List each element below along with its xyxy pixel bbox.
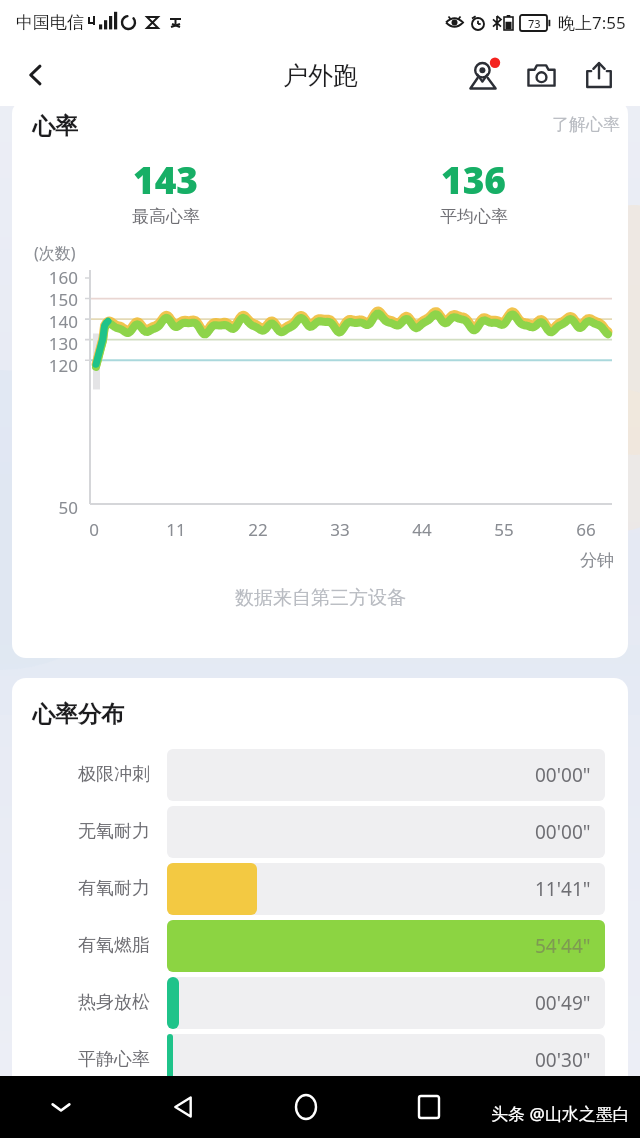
staticText: 22: [244, 518, 272, 541]
staticText: 44: [408, 518, 436, 541]
staticText: 66: [572, 518, 600, 541]
staticText: 00'49": [535, 990, 591, 1016]
button[interactable]: Home: [244, 1076, 367, 1138]
button[interactable]: 极限冲刺: [12, 746, 628, 803]
staticText: 户外跑: [283, 60, 358, 91]
staticText: 中国电信: [16, 12, 84, 33]
staticText: 0: [80, 518, 108, 541]
staticText: 00'00": [535, 762, 591, 788]
staticText: 极限冲刺: [12, 763, 150, 786]
staticText: 130: [38, 332, 78, 355]
staticText: 73: [528, 16, 541, 31]
staticText: 00'30": [535, 1047, 591, 1073]
staticText: 120: [38, 354, 78, 377]
staticText: 无氧耐力: [12, 820, 150, 843]
button[interactable]: Route map: [454, 46, 512, 104]
staticText: 54'44": [535, 933, 591, 959]
button[interactable]: Share: [570, 46, 628, 104]
button[interactable]: Camera: [512, 46, 570, 104]
staticText: 最高心率: [132, 206, 200, 227]
staticText: 00'00": [535, 819, 591, 845]
staticText: 数据来自第三方设备: [235, 586, 406, 610]
staticText: 了解心率: [552, 114, 620, 135]
button[interactable]: Hide: [0, 1076, 122, 1138]
button[interactable]: 了解心率: [544, 110, 628, 139]
button[interactable]: Recents: [367, 1076, 490, 1138]
staticText: 150: [38, 288, 78, 311]
staticText: 55: [490, 518, 518, 541]
staticText: 11'41": [535, 876, 591, 902]
staticText: (次数): [34, 242, 76, 264]
staticText: 心率分布: [32, 700, 124, 729]
staticText: 50: [38, 496, 78, 519]
staticText: 136: [441, 154, 507, 204]
staticText: 分钟: [580, 550, 614, 571]
staticText: 有氧燃脂: [12, 934, 150, 957]
staticText: 11: [162, 518, 190, 541]
button[interactable]: 热身放松: [12, 974, 628, 1031]
button[interactable]: 无氧耐力: [12, 803, 628, 860]
staticText: 心率: [32, 112, 78, 141]
staticText: 平均心率: [440, 206, 508, 227]
staticText: 有氧耐力: [12, 877, 150, 900]
staticText: 头条 @山水之墨白: [491, 1102, 630, 1125]
staticText: 33: [326, 518, 354, 541]
button[interactable]: 有氧燃脂: [12, 917, 628, 974]
button[interactable]: 有氧耐力: [12, 860, 628, 917]
button[interactable]: 平静心率: [12, 1031, 628, 1088]
button[interactable]: Back: [122, 1076, 244, 1138]
staticText: 平静心率: [12, 1048, 150, 1071]
staticText: 143: [133, 154, 199, 204]
button[interactable]: Back: [8, 47, 64, 103]
staticText: 140: [38, 310, 78, 333]
staticText: 热身放松: [12, 991, 150, 1014]
staticText: 160: [38, 266, 78, 289]
staticText: 晚上7:55: [558, 11, 626, 34]
